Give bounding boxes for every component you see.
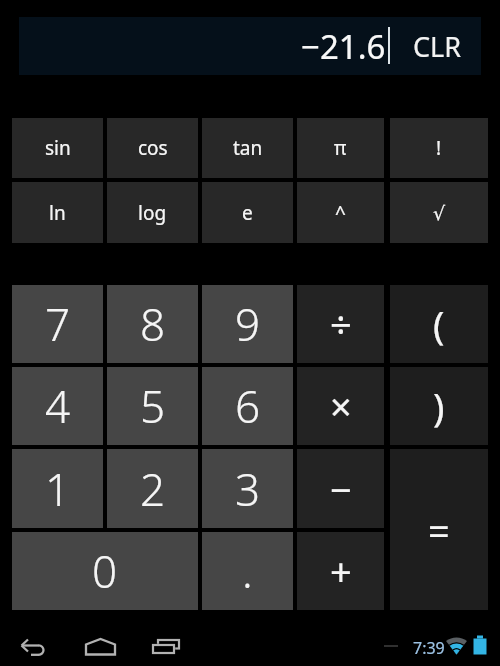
staticText: × [330, 380, 352, 432]
staticText: √ [433, 202, 446, 224]
button[interactable]: ! [390, 118, 488, 178]
button[interactable]: 2 [107, 449, 198, 528]
staticText: 4 [45, 376, 71, 436]
button[interactable]: CLR [394, 17, 481, 75]
button[interactable]: 4 [12, 367, 103, 445]
staticText: ( [433, 298, 445, 350]
staticText: ln [49, 200, 66, 226]
button[interactable]: 3 [202, 449, 293, 528]
staticText: tan [233, 135, 263, 161]
staticText: = [428, 504, 450, 556]
button[interactable]: 5 [107, 367, 198, 445]
staticText: 1 [45, 459, 71, 519]
button[interactable]: ^ [297, 182, 384, 243]
button[interactable]: 9 [202, 285, 293, 363]
staticText: −21.6 [301, 24, 386, 69]
staticText: . [242, 541, 253, 601]
button[interactable]: ) [390, 367, 488, 445]
staticText: CLR [413, 28, 462, 65]
staticText: 9 [235, 294, 261, 354]
button[interactable]: π [297, 118, 384, 178]
button[interactable]: × [297, 367, 384, 445]
staticText: e [242, 200, 253, 226]
button[interactable]: 7 [12, 285, 103, 363]
button[interactable]: sin [12, 118, 103, 178]
staticText: − [330, 463, 352, 515]
button[interactable]: tan [202, 118, 293, 178]
staticText: sin [45, 135, 71, 161]
staticText: 6 [235, 376, 261, 436]
button[interactable]: ( [390, 285, 488, 363]
staticText: + [330, 545, 352, 597]
staticText: ^ [335, 200, 346, 226]
staticText: 5 [140, 376, 166, 436]
button[interactable] [151, 634, 181, 658]
button[interactable]: = [390, 449, 488, 610]
button[interactable]: √ [390, 182, 488, 243]
staticText: 3 [235, 459, 261, 519]
button[interactable] [20, 634, 48, 658]
button[interactable]: ln [12, 182, 103, 243]
staticText: cos [138, 135, 168, 161]
button[interactable]: 6 [202, 367, 293, 445]
staticText: log [138, 200, 167, 226]
staticText: 2 [140, 459, 166, 519]
staticText: 8 [140, 294, 166, 354]
staticText: π [334, 135, 347, 161]
button[interactable]: + [297, 532, 384, 610]
button[interactable] [84, 634, 117, 658]
staticText: 0 [92, 541, 118, 601]
button[interactable]: cos [107, 118, 198, 178]
staticText: 7:39 [413, 637, 445, 659]
staticText: 7 [45, 294, 71, 354]
staticText: ) [433, 380, 445, 432]
button[interactable]: ÷ [297, 285, 384, 363]
button[interactable]: e [202, 182, 293, 243]
button[interactable]: − [297, 449, 384, 528]
button[interactable]: 1 [12, 449, 103, 528]
button[interactable]: . [202, 532, 293, 610]
button[interactable]: 8 [107, 285, 198, 363]
button[interactable]: 0 [12, 532, 198, 610]
button[interactable]: log [107, 182, 198, 243]
staticText: ! [436, 135, 442, 161]
staticText: ÷ [330, 298, 352, 350]
